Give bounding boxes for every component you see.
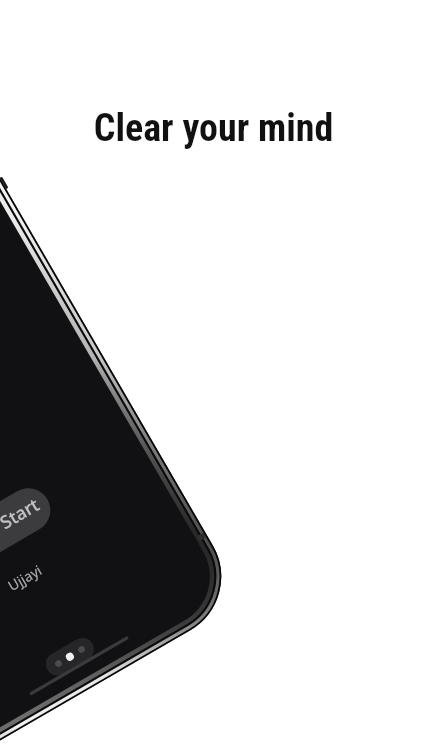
other: Phone showing the meditation app — [0, 0, 422, 750]
staticText: Ujjayi — [4, 560, 46, 595]
staticText: Start — [0, 492, 44, 535]
staticText: Clear your mind — [5, 106, 422, 151]
